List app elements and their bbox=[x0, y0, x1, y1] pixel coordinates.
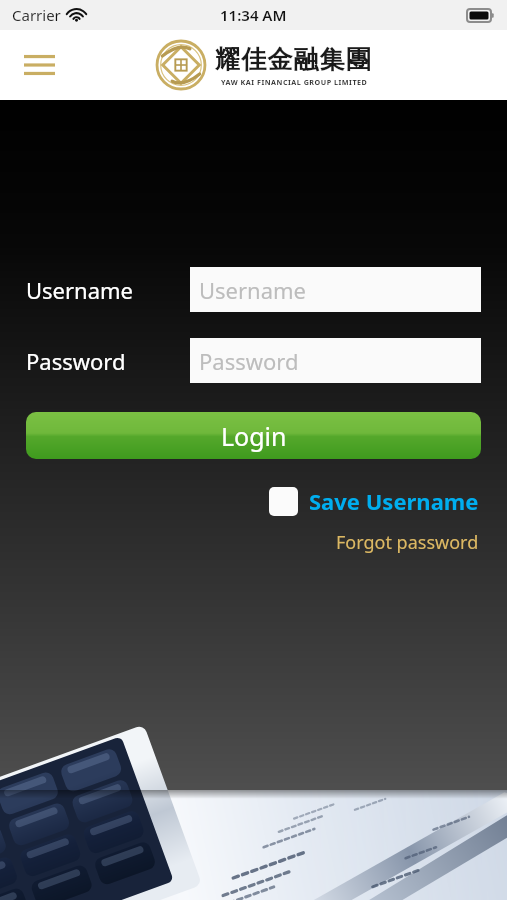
staticText: Username bbox=[26, 275, 190, 305]
button[interactable]: Save Username bbox=[269, 486, 479, 516]
staticText: Username bbox=[199, 275, 307, 305]
staticText: YAW KAI FINANCIAL GROUP LIMITED bbox=[221, 77, 368, 87]
button[interactable]: Username bbox=[190, 267, 481, 312]
staticText: 11:34 AM bbox=[220, 5, 287, 25]
staticText: 耀佳金融集團 bbox=[215, 44, 373, 75]
button[interactable]: Menu bbox=[16, 44, 62, 86]
button[interactable]: Password bbox=[190, 338, 481, 383]
staticText: Login bbox=[221, 419, 287, 453]
staticText: Password bbox=[26, 346, 190, 376]
staticText: Password bbox=[199, 346, 299, 376]
button[interactable]: Forgot password bbox=[336, 530, 479, 555]
button[interactable]: Login bbox=[26, 412, 481, 459]
staticText: Carrier bbox=[12, 5, 61, 25]
staticText: Save Username bbox=[309, 486, 479, 516]
